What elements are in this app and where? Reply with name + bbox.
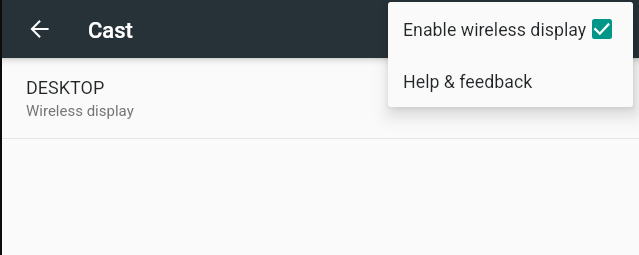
staticText: Enable wireless display — [403, 19, 587, 40]
button[interactable]: Navigate up — [16, 5, 64, 53]
staticText: DESKTOP — [26, 77, 105, 98]
button[interactable]: Enable wireless display — [388, 3, 633, 55]
button[interactable]: DESKTOP — [0, 58, 639, 138]
staticText: Cast — [88, 18, 133, 44]
staticText: Help & feedback — [403, 71, 533, 92]
button[interactable]: Help & feedback — [388, 55, 633, 107]
staticText: Wireless display — [26, 102, 134, 120]
